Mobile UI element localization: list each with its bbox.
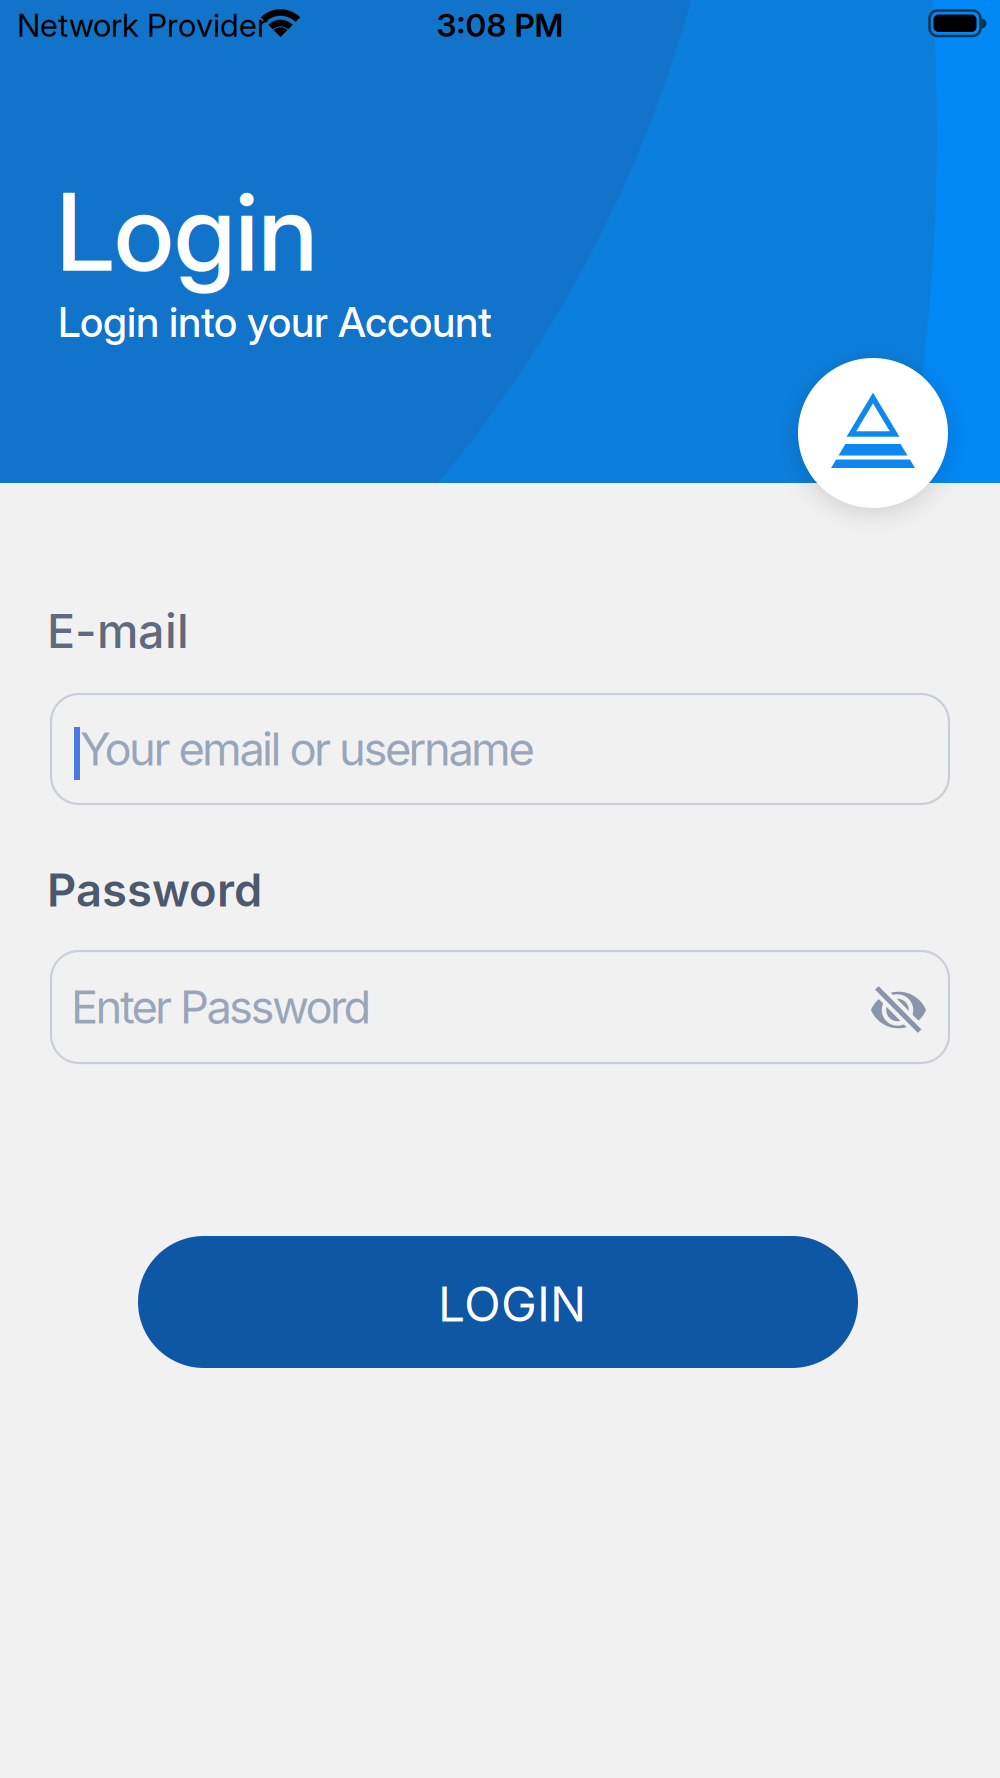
staticText: Login — [56, 167, 318, 297]
button[interactable] — [866, 978, 930, 1042]
staticText: Network Provider — [17, 6, 268, 44]
staticText: Enter Password — [71, 980, 371, 1034]
staticText: Password — [47, 863, 262, 917]
staticText: 3:08 PM — [436, 6, 563, 44]
button[interactable]: Your email or username — [51, 694, 949, 804]
button[interactable]: LOGIN — [138, 1236, 858, 1368]
button[interactable]: Enter Password — [51, 951, 949, 1063]
staticText: E-mail — [47, 603, 189, 659]
staticText: LOGIN — [438, 1276, 586, 1332]
staticText: Your email or username — [80, 722, 534, 776]
staticText: Login into your Account — [58, 298, 492, 346]
